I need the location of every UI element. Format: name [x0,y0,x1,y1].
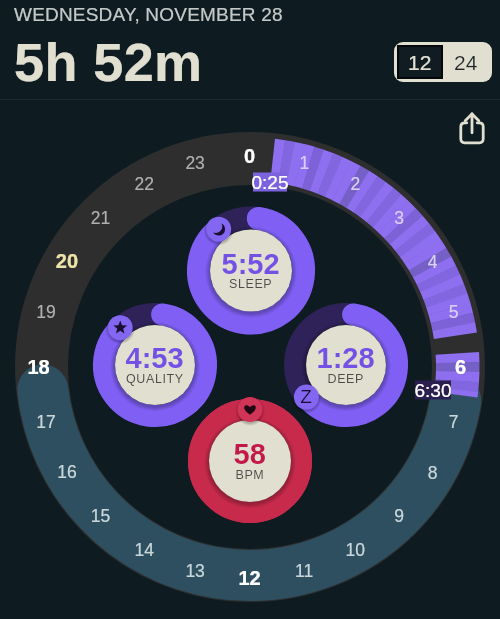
staticText: 5h 52m [14,32,203,92]
button[interactable]: 24 [443,45,489,79]
button[interactable]: Share [452,108,492,148]
staticText: WEDNESDAY, NOVEMBER 28 [14,4,283,25]
button[interactable]: 12 [397,45,443,79]
staticText: 24 [454,51,478,74]
staticText: 12 [408,51,432,74]
